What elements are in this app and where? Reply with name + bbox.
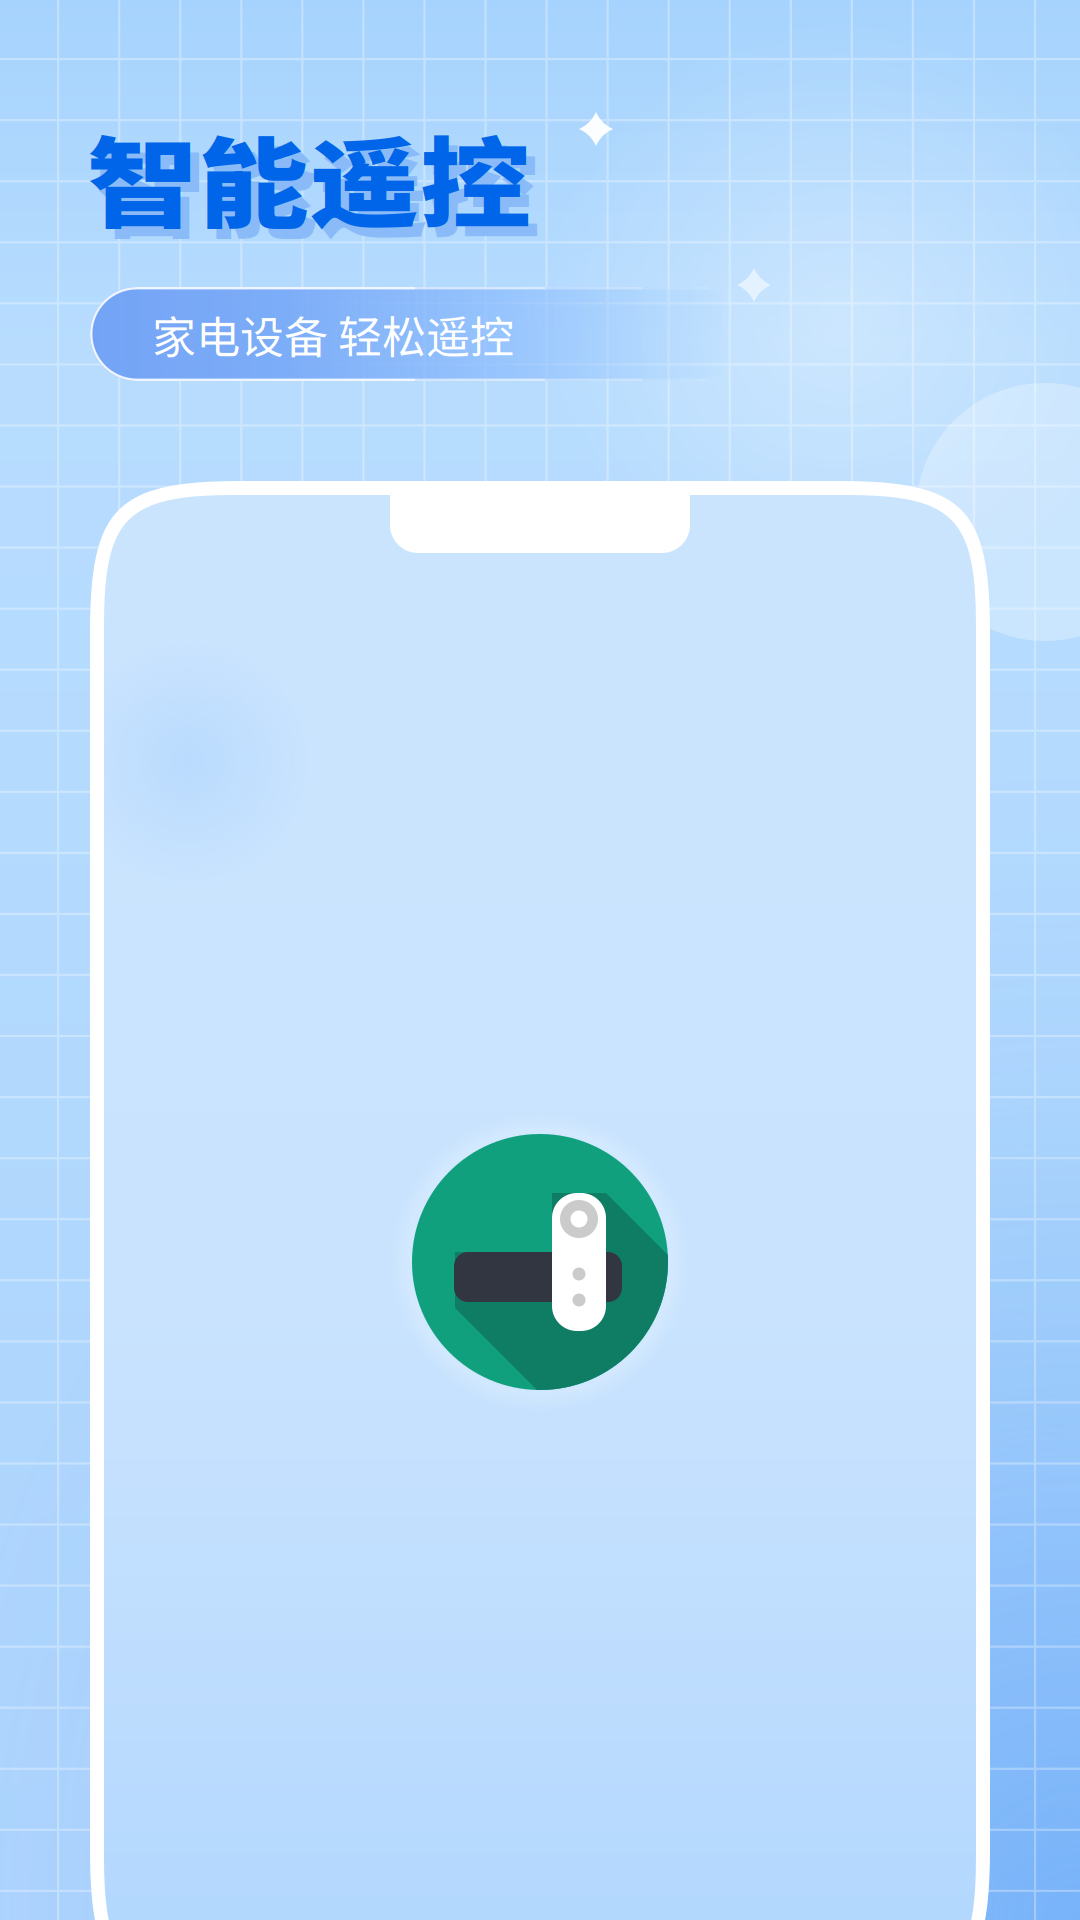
staticText: 家电设备 轻松遥控 <box>152 302 514 366</box>
staticText: 智能遥控 <box>120 116 516 258</box>
staticText: 智能遥控 <box>111 106 507 248</box>
